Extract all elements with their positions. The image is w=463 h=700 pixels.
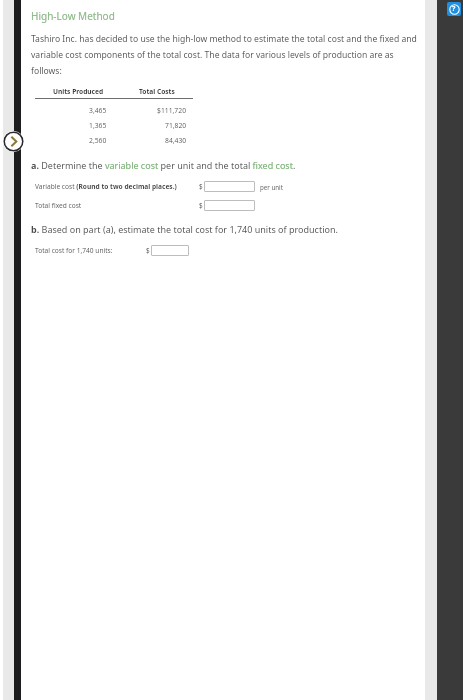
staticText: 84,430 — [165, 136, 187, 145]
staticText: Total fixed cost — [35, 201, 82, 210]
button[interactable]: Next question — [3, 131, 24, 152]
staticText: $111,720 — [157, 106, 187, 115]
staticText: Variable cost (Round to two decimal plac… — [35, 182, 177, 191]
staticText: Tashiro Inc. has decided to use the high… — [31, 33, 417, 77]
staticText: per unit — [260, 183, 283, 191]
staticText: 1,365 — [89, 121, 107, 130]
button[interactable]: Help — [447, 2, 461, 16]
button[interactable]: Answer input field — [151, 245, 189, 256]
staticText: $ — [199, 201, 203, 210]
button[interactable]: Answer input field — [204, 200, 255, 211]
staticText: Units Produced — [53, 87, 104, 96]
staticText: Total cost for 1,740 units: — [35, 246, 113, 255]
staticText: Total Costs — [139, 87, 175, 96]
button[interactable]: Answer input field — [204, 181, 255, 192]
staticText: 2,560 — [89, 136, 107, 145]
staticText: a. Determine the variable cost per unit … — [31, 159, 296, 171]
staticText: b. Based on part (a), estimate the total… — [31, 223, 338, 235]
staticText: ? — [452, 4, 456, 14]
staticText: High-Low Method — [31, 9, 115, 23]
staticText: $ — [146, 246, 150, 255]
staticText: $ — [199, 182, 203, 191]
staticText: 71,820 — [165, 121, 187, 130]
staticText: 3,465 — [89, 106, 107, 115]
